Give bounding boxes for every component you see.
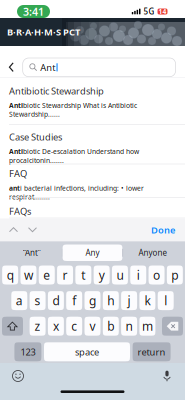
button[interactable]: y — [94, 265, 110, 284]
button[interactable]: f — [66, 291, 82, 310]
staticText: Anyone — [138, 247, 167, 258]
staticText: Ant — [40, 61, 55, 74]
button[interactable]: Previous result — [4, 218, 23, 241]
staticText: l — [164, 293, 167, 308]
staticText: 3:41 — [23, 4, 44, 19]
staticText: a — [16, 293, 23, 308]
staticText: Case Studies — [9, 131, 62, 143]
button[interactable]: Shift — [2, 317, 23, 336]
button[interactable]: c — [66, 317, 82, 336]
button[interactable]: Antibiotic Stewardship — [0, 78, 185, 124]
button[interactable]: Next result — [23, 218, 42, 241]
button[interactable]: s — [30, 291, 46, 310]
button[interactable]: e — [39, 265, 55, 284]
button[interactable]: “Ant” — [2, 244, 62, 261]
button[interactable]: h — [103, 291, 119, 310]
staticText: i — [137, 267, 140, 283]
button[interactable]: v — [84, 317, 100, 336]
button[interactable]: x — [48, 317, 64, 336]
button[interactable]: Case Studies — [0, 125, 185, 164]
staticText: w — [24, 267, 33, 283]
staticText: r — [63, 267, 68, 283]
button[interactable]: i — [130, 265, 146, 284]
staticText: f — [72, 293, 76, 308]
staticText: “Ant” — [23, 247, 41, 258]
staticText: Antibiotic Stewardship — [9, 85, 104, 97]
staticText: h — [107, 293, 114, 308]
button[interactable]: k — [139, 291, 155, 310]
button[interactable]: Back — [0, 58, 23, 77]
button[interactable]: 123 — [14, 342, 41, 361]
staticText: x — [53, 318, 59, 334]
button[interactable]: Ant — [23, 58, 176, 77]
staticText: j — [128, 293, 131, 308]
staticText: Done — [151, 224, 175, 236]
staticText: space — [75, 346, 99, 358]
staticText: t — [81, 267, 85, 283]
button[interactable]: Anyone — [123, 244, 183, 261]
staticText: FAQs — [9, 205, 31, 217]
staticText: u — [116, 267, 123, 283]
staticText: B·R·A·H·M·S PCT — [7, 26, 80, 38]
staticText: 123 — [20, 346, 35, 358]
button[interactable]: g — [84, 291, 100, 310]
staticText: y — [99, 267, 105, 283]
button[interactable]: w — [20, 265, 36, 284]
staticText: FAQ — [9, 167, 27, 180]
staticText: return — [138, 346, 166, 358]
button[interactable]: l — [158, 291, 174, 310]
staticText: m — [142, 318, 153, 334]
button[interactable]: space — [44, 342, 130, 361]
staticText: b — [107, 318, 114, 334]
button[interactable]: u — [112, 265, 128, 284]
staticText: Antibiotic De-escalation Understand how … — [9, 147, 139, 165]
staticText: v — [89, 318, 95, 334]
staticText: q — [7, 267, 14, 283]
staticText: z — [35, 318, 41, 334]
staticText: e — [43, 267, 50, 283]
staticText: g — [89, 293, 96, 308]
staticText: p — [171, 267, 178, 283]
button[interactable]: Dictate — [156, 368, 178, 384]
button[interactable]: d — [48, 291, 64, 310]
staticText: s — [35, 293, 41, 308]
staticText: n — [126, 318, 133, 334]
button[interactable]: z — [30, 317, 46, 336]
button[interactable]: b — [103, 317, 119, 336]
staticText: 14 — [158, 7, 166, 16]
staticText: Antibiotic Stewardship What is Antibioti… — [9, 101, 137, 119]
staticText: d — [52, 293, 59, 308]
staticText: o — [153, 267, 160, 283]
button[interactable]: m — [139, 317, 155, 336]
button[interactable]: a — [11, 291, 27, 310]
button[interactable]: FAQs — [0, 198, 185, 218]
button[interactable]: n — [121, 317, 137, 336]
staticText: Any — [85, 247, 99, 258]
staticText: anti bacterial infections, including: • … — [9, 184, 144, 201]
button[interactable]: FAQ — [0, 164, 185, 197]
button[interactable]: t — [75, 265, 91, 284]
button[interactable]: return — [133, 342, 171, 361]
button[interactable]: Any — [62, 244, 122, 261]
button[interactable]: Emoji — [7, 368, 29, 384]
staticText: c — [71, 318, 77, 334]
button[interactable]: Done — [144, 218, 182, 241]
button[interactable]: Delete — [162, 317, 183, 336]
button[interactable]: p — [167, 265, 183, 284]
button[interactable]: q — [2, 265, 18, 284]
staticText: 5G — [143, 6, 154, 17]
button[interactable]: r — [57, 265, 73, 284]
staticText: k — [144, 293, 150, 308]
button[interactable]: j — [121, 291, 137, 310]
button[interactable]: o — [149, 265, 165, 284]
